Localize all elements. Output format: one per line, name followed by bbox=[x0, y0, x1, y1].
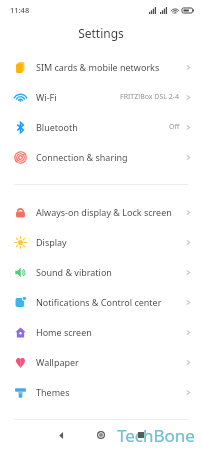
button[interactable]: Always-on display & Lock screen bbox=[0, 197, 202, 227]
button[interactable]: Themes bbox=[0, 377, 202, 407]
staticText: Bluetooth bbox=[36, 121, 169, 133]
button[interactable]: Bluetooth bbox=[0, 112, 202, 142]
staticText: Themes bbox=[36, 386, 185, 398]
button[interactable]: Back bbox=[41, 422, 81, 448]
staticText: FRITZ!Box DSL 2-4 bbox=[120, 92, 180, 102]
button[interactable]: Home bbox=[81, 422, 121, 448]
staticText: Always-on display & Lock screen bbox=[36, 206, 185, 218]
staticText: TechBone bbox=[117, 424, 195, 447]
staticText: Home screen bbox=[36, 326, 185, 338]
staticText: Display bbox=[36, 236, 185, 248]
staticText: Wallpaper bbox=[36, 356, 185, 368]
staticText: Sound & vibration bbox=[36, 266, 185, 278]
button[interactable]: Wallpaper bbox=[0, 347, 202, 377]
staticText: Wi-Fi bbox=[36, 91, 120, 103]
button[interactable]: SIM cards & mobile networks bbox=[0, 52, 202, 82]
staticText: Off bbox=[169, 122, 180, 132]
button[interactable]: Notifications & Control center bbox=[0, 287, 202, 317]
staticText: Settings bbox=[78, 25, 124, 41]
staticText: 11:48 bbox=[10, 5, 30, 15]
staticText: Connection & sharing bbox=[36, 151, 185, 163]
button[interactable]: Display bbox=[0, 227, 202, 257]
button[interactable]: Wi-Fi bbox=[0, 82, 202, 112]
button[interactable]: Recent apps bbox=[121, 422, 161, 448]
staticText: Notifications & Control center bbox=[36, 296, 185, 308]
button[interactable]: Sound & vibration bbox=[0, 257, 202, 287]
button[interactable]: Connection & sharing bbox=[0, 142, 202, 172]
button[interactable]: Home screen bbox=[0, 317, 202, 347]
staticText: SIM cards & mobile networks bbox=[36, 61, 185, 73]
